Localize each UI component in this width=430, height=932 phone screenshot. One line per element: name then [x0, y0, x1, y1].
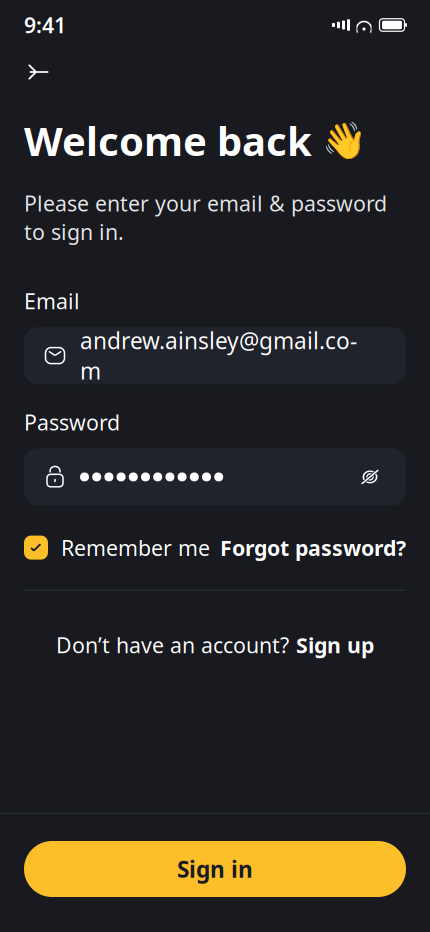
staticText: Please enter your email & password to si… [24, 189, 387, 246]
staticText: Password [24, 408, 120, 436]
staticText: andrew.ainsley@gmail.com [80, 325, 357, 386]
staticText: Welcome back [24, 114, 322, 167]
staticText: Email [24, 287, 80, 315]
button[interactable]: Sign in [24, 841, 406, 897]
staticText: 9:41 [24, 11, 66, 39]
staticText: Don’t have an account? [56, 631, 289, 659]
button[interactable]: Back [16, 50, 60, 94]
staticText: Forgot password? [220, 533, 406, 562]
button[interactable]: andrew.ainsley@gmail.com [24, 327, 406, 384]
button[interactable]: Forgot password? [220, 533, 406, 562]
button[interactable]: Don’t have an account? [24, 625, 406, 665]
staticText: Remember me [61, 533, 210, 562]
staticText: 👋 [322, 120, 367, 161]
staticText: Sign in [177, 854, 253, 884]
button[interactable]: Remember me [24, 533, 210, 562]
staticText: Sign up [296, 631, 374, 659]
button[interactable]: Show password [354, 461, 386, 493]
